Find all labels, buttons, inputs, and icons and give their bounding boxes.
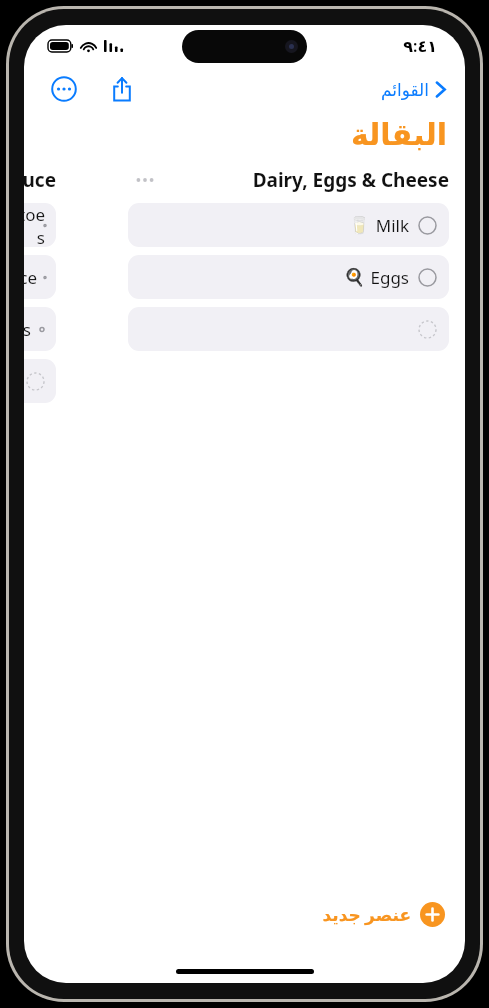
staticText: البقالة xyxy=(350,117,447,152)
staticText: القوائم xyxy=(380,80,429,100)
staticText: Potatoes xyxy=(24,203,45,247)
staticText: 🍳 xyxy=(343,267,365,287)
staticText: 🥛 xyxy=(348,215,370,235)
button[interactable]: Share xyxy=(102,69,142,109)
staticText: عنصر جديد xyxy=(322,903,411,926)
staticText: Dairy, Eggs & Cheese xyxy=(252,167,449,193)
button[interactable]: Lettuce xyxy=(24,255,56,299)
button[interactable]: List options xyxy=(128,163,162,197)
staticText: Apples xyxy=(24,318,31,341)
staticText: Milk xyxy=(375,214,409,237)
button[interactable]: More options xyxy=(44,69,84,109)
staticText: Produce xyxy=(24,167,56,193)
button[interactable]: 🥛 xyxy=(128,203,449,247)
staticText: Lettuce xyxy=(24,266,37,289)
button[interactable]: القوائم xyxy=(376,75,451,104)
staticText: Eggs xyxy=(370,266,409,289)
button[interactable] xyxy=(24,359,56,403)
staticText: ٩:٤١ xyxy=(403,35,437,57)
button[interactable]: Apples xyxy=(24,307,56,351)
button[interactable]: 🍳 xyxy=(128,255,449,299)
button[interactable]: عنصر جديد xyxy=(318,898,449,931)
button[interactable]: Potatoes xyxy=(24,203,56,247)
